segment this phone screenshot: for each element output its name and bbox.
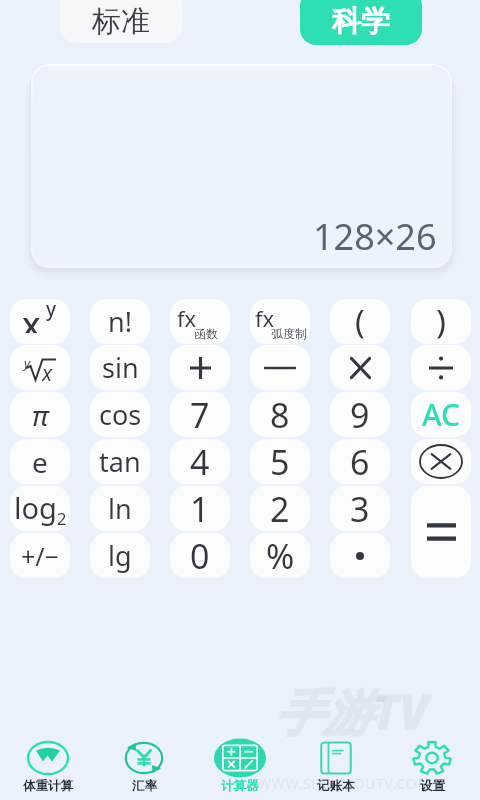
button[interactable]: +/− — [10, 533, 70, 578]
staticText: +/− — [21, 539, 59, 573]
staticText: 8 — [270, 392, 290, 437]
staticText: log2 — [14, 488, 67, 530]
staticText: 弧度制 — [271, 326, 307, 341]
staticText: 3 — [350, 486, 370, 531]
button[interactable]: 0 — [170, 533, 230, 578]
staticText: 1 — [190, 486, 210, 531]
staticText: e — [32, 443, 48, 481]
staticText: 5 — [270, 439, 290, 484]
button[interactable]: % — [250, 533, 310, 578]
staticText: 手游TV — [274, 678, 430, 745]
staticText: cos — [99, 396, 142, 433]
button[interactable]: Calculator — [192, 730, 288, 800]
button[interactable]: 9 — [330, 392, 390, 437]
staticText: 0 — [190, 533, 210, 578]
button[interactable]: Radian mode — [250, 299, 310, 344]
button[interactable]: 7 — [170, 392, 230, 437]
staticText: 科学 — [332, 3, 390, 40]
button[interactable]: Plus — [170, 345, 230, 390]
staticText: 计算器 — [221, 778, 259, 794]
staticText: 7 — [190, 392, 210, 437]
staticText: ln — [108, 490, 132, 527]
button[interactable]: ( — [330, 299, 390, 344]
staticText: 记账本 — [317, 778, 355, 794]
button[interactable]: 3 — [330, 486, 390, 531]
staticText: 标准 — [92, 3, 150, 40]
staticText: % — [266, 533, 295, 578]
button[interactable]: π — [10, 392, 70, 437]
button[interactable]: Weight calculator — [0, 730, 96, 800]
button[interactable]: Minus — [250, 345, 310, 390]
staticText: sin — [102, 349, 139, 386]
button[interactable]: tan — [90, 439, 150, 484]
button[interactable]: 5 — [250, 439, 310, 484]
staticText: 函数 — [194, 326, 218, 341]
button[interactable]: x to the power y — [10, 299, 70, 344]
staticText: 4 — [190, 439, 210, 484]
button[interactable]: 8 — [250, 392, 310, 437]
button[interactable]: Functions — [170, 299, 230, 344]
staticText: n! — [108, 303, 132, 340]
button[interactable]: ) — [411, 299, 471, 344]
button[interactable]: Settings — [384, 730, 480, 800]
staticText: tan — [99, 443, 141, 480]
staticText: 汇率 — [132, 778, 157, 794]
button[interactable]: Equals — [411, 486, 471, 578]
staticText: 9 — [350, 392, 370, 437]
button[interactable]: n! — [90, 299, 150, 344]
staticText: ( — [355, 299, 365, 344]
button[interactable]: 2 — [250, 486, 310, 531]
staticText: 设置 — [420, 778, 445, 794]
button[interactable]: sin — [90, 345, 150, 390]
staticText: 6 — [350, 439, 370, 484]
staticText: π — [32, 396, 49, 434]
button[interactable]: 4 — [170, 439, 230, 484]
button[interactable]: ln — [90, 486, 150, 531]
staticText: x — [22, 301, 41, 333]
staticText: WWW.SHOUYOUTV.COM — [258, 774, 431, 793]
button[interactable]: Ledger — [288, 730, 384, 800]
button[interactable]: y-th root of x — [10, 345, 70, 390]
button[interactable]: 标准 — [60, 0, 182, 43]
staticText: x — [42, 359, 53, 385]
staticText: 体重计算 — [23, 778, 73, 794]
button[interactable]: Backspace — [411, 439, 471, 484]
button[interactable]: e — [10, 439, 70, 484]
staticText: ) — [436, 299, 446, 344]
button[interactable]: Divide — [411, 345, 471, 390]
staticText: y — [24, 354, 31, 372]
staticText: fx — [255, 303, 275, 333]
button[interactable]: Decimal point — [330, 533, 390, 578]
staticText: AC — [422, 394, 461, 435]
staticText: 2 — [270, 486, 290, 531]
button[interactable]: Multiply — [330, 345, 390, 390]
button[interactable]: cos — [90, 392, 150, 437]
button[interactable]: All clear — [411, 392, 471, 437]
button[interactable]: 科学 — [300, 0, 422, 45]
staticText: 128×26 — [313, 212, 437, 261]
button[interactable]: 6 — [330, 439, 390, 484]
staticText: lg — [108, 537, 132, 574]
staticText: fx — [177, 303, 197, 333]
button[interactable]: log2 — [10, 486, 70, 531]
button[interactable]: Exchange rate — [96, 730, 192, 800]
button[interactable]: 1 — [170, 486, 230, 531]
staticText: y — [46, 299, 57, 322]
button[interactable]: lg — [90, 533, 150, 578]
